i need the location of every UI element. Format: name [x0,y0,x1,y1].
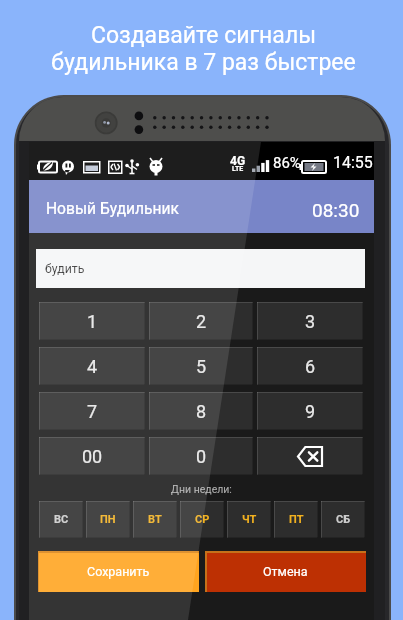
button[interactable]: 1 [39,302,145,340]
staticText: 4 [87,356,98,377]
staticText: LTE [232,165,244,173]
staticText: 1 [87,311,98,332]
button[interactable]: ПН [86,501,130,538]
staticText: ПТ [289,513,304,526]
button[interactable]: СБ [321,501,365,538]
button[interactable]: 6 [257,347,363,385]
button[interactable]: Backspace [257,437,363,475]
staticText: 2 [196,311,207,332]
button[interactable]: 9 [257,392,363,430]
staticText: Создавайте сигналы будильника в 7 раз бы… [2,22,403,75]
button[interactable]: 4 [39,347,145,385]
staticText: 3 [305,311,316,332]
staticText: 5 [196,356,207,377]
staticText: ПН [100,513,116,526]
button[interactable]: ВТ [133,501,177,538]
staticText: ВС [54,513,69,526]
staticText: 6 [305,356,316,377]
button[interactable]: 3 [257,302,363,340]
staticText: ВТ [148,513,162,526]
staticText: 08:30 [312,199,360,221]
staticText: 14:55 [333,153,373,172]
button[interactable]: 2 [149,302,253,340]
button[interactable]: 5 [149,347,253,385]
staticText: Новый Будильник [46,200,180,218]
button[interactable]: будить [36,249,365,288]
button[interactable]: Сохранить [38,551,199,592]
button[interactable]: 0 [149,437,253,475]
staticText: 0 [196,446,207,467]
button[interactable]: ЧТ [227,501,271,538]
staticText: 00 [82,446,103,467]
button[interactable]: ПТ [274,501,318,538]
button[interactable]: Отмена [205,551,366,592]
staticText: 7 [87,401,98,422]
staticText: 4G [230,154,246,168]
staticText: Сохранить [87,564,150,579]
staticText: ЧТ [242,513,257,526]
staticText: 8 [196,401,207,422]
staticText: будить [45,262,85,276]
button[interactable]: 8 [149,392,253,430]
button[interactable]: Новый Будильник [29,180,374,233]
staticText: СБ [336,513,351,526]
button[interactable]: 7 [39,392,145,430]
staticText: Отмена [263,564,308,579]
staticText: Дни недели: [29,483,374,495]
staticText: 86% [273,154,301,172]
button[interactable]: ВС [39,501,83,538]
button[interactable]: СР [180,501,224,538]
staticText: СР [195,513,210,526]
button[interactable]: 00 [39,437,145,475]
staticText: 9 [305,401,316,422]
